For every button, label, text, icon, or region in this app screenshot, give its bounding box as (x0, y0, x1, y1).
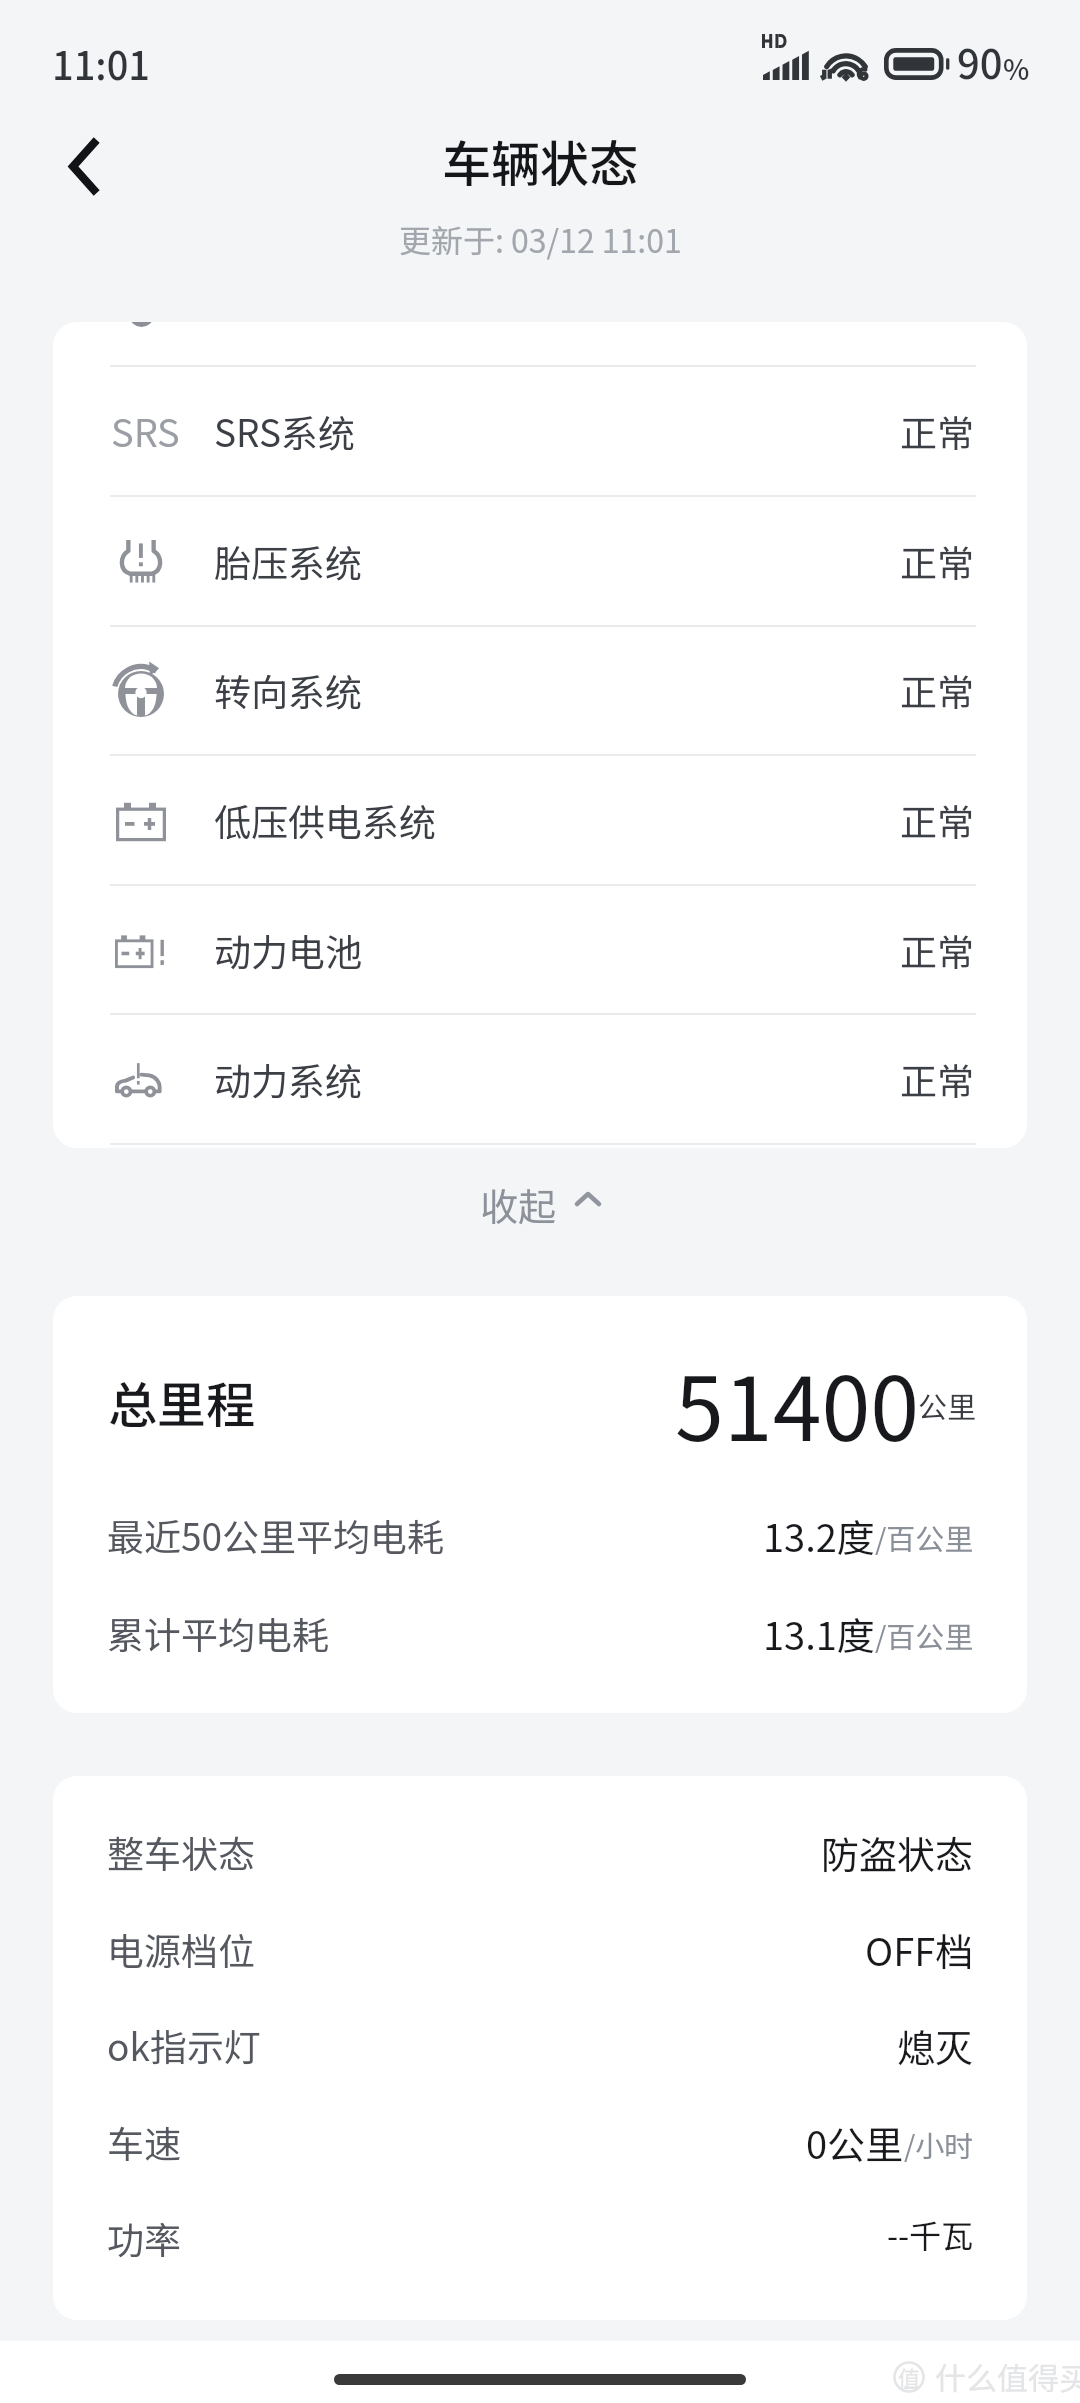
staticText: 13.2度 (763, 1508, 875, 1560)
staticText: 转向系统 (214, 663, 362, 717)
button[interactable]: 转向系统 (53, 625, 1027, 754)
staticText: 低压供电系统 (214, 793, 436, 847)
staticText: 正常 (900, 534, 974, 588)
staticText: 车速 (107, 2115, 181, 2167)
button[interactable]: SRS系统 (53, 366, 1027, 495)
staticText: % (1003, 48, 1030, 89)
staticText: 值 (898, 2361, 921, 2393)
staticText: 功率 (107, 2211, 181, 2263)
staticText: 动力电池 (214, 923, 362, 977)
staticText: 正常 (900, 663, 974, 717)
button[interactable]: 收起 (0, 1148, 1080, 1260)
staticText: SRS (111, 403, 180, 458)
staticText: 51400 (675, 1339, 920, 1466)
button[interactable]: 动力电池 (53, 885, 1027, 1014)
button[interactable]: Back (26, 118, 118, 210)
staticText: SRS系统 (214, 404, 355, 458)
staticText: 正常 (900, 404, 974, 458)
staticText: 电源档位 (107, 1922, 255, 1974)
button[interactable]: 胎压系统 (53, 496, 1027, 625)
button[interactable]: 低压供电系统 (53, 755, 1027, 884)
staticText: 胎压系统 (214, 534, 362, 588)
button[interactable]: 动力系统 (53, 1014, 1027, 1143)
staticText: 总里程 (108, 1366, 256, 1437)
staticText: 整车状态 (107, 1825, 255, 1877)
staticText: 公里 (918, 1384, 977, 1426)
staticText: 防盗状态 (821, 1825, 974, 1877)
staticText: 收起 (480, 1177, 557, 1232)
staticText: 最近50公里平均电耗 (107, 1508, 445, 1560)
staticText: 什么值得买 (935, 2354, 1080, 2399)
staticText: 更新于: 03/12 11:01 (399, 216, 682, 262)
staticText: --千瓦 (887, 2211, 974, 2257)
staticText: 正常 (900, 1052, 974, 1106)
staticText: 正常 (900, 793, 974, 847)
staticText: /小时 (904, 2123, 974, 2165)
staticText: 车辆状态 (442, 125, 639, 196)
staticText: 90 (957, 33, 1003, 91)
staticText: 动力系统 (214, 1052, 362, 1106)
staticText: ok指示灯 (107, 2018, 261, 2070)
staticText: 熄灭 (897, 2018, 974, 2070)
staticText: 累计平均电耗 (107, 1606, 329, 1658)
staticText: 13.1度 (763, 1606, 875, 1658)
staticText: /百公里 (875, 1614, 974, 1656)
staticText: 正常 (900, 923, 974, 977)
staticText: /百公里 (875, 1516, 974, 1558)
staticText: OFF档 (865, 1922, 974, 1974)
staticText: 11:01 (52, 36, 150, 91)
staticText: 0公里 (806, 2115, 904, 2167)
